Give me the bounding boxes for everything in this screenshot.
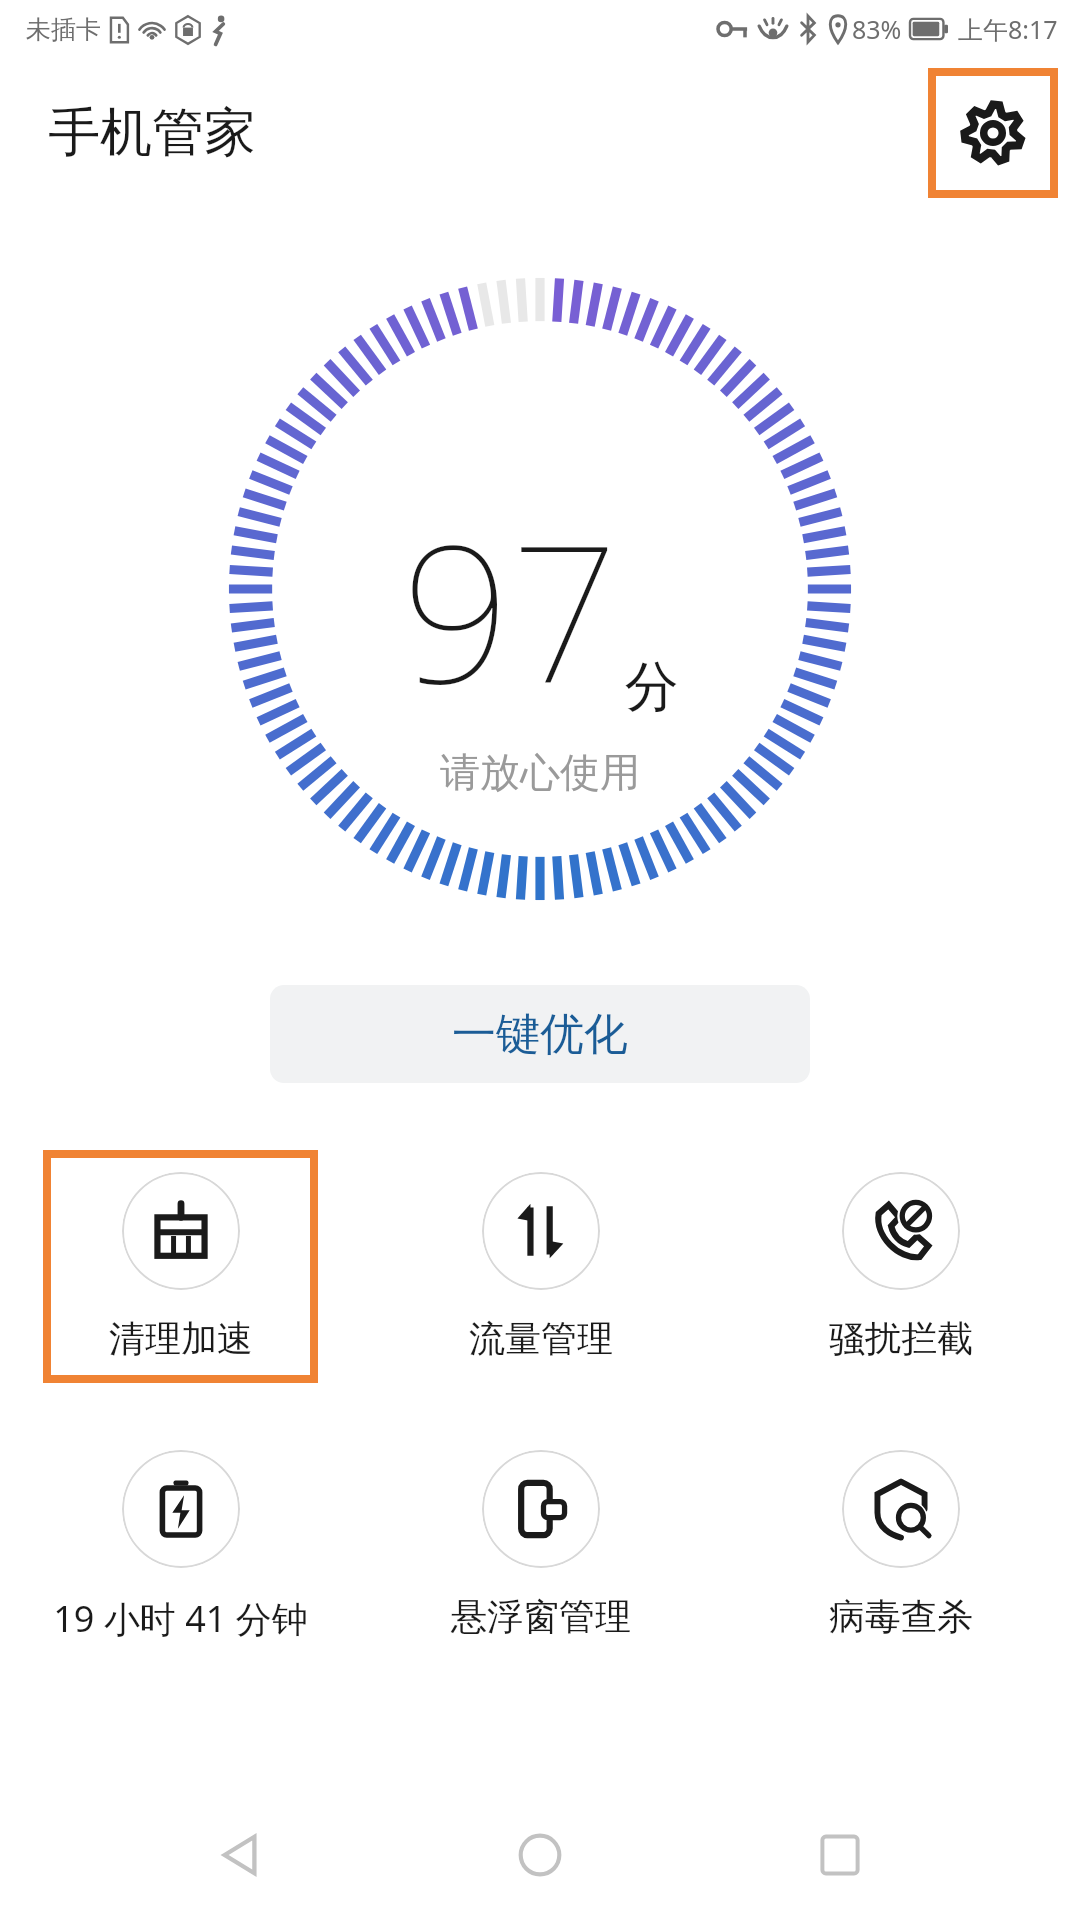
staticText: 流量管理: [469, 1316, 613, 1361]
staticText: 请放心使用: [440, 747, 640, 797]
staticText: 19 小时 41 分钟: [53, 1594, 308, 1643]
staticText: 悬浮窗管理: [451, 1594, 631, 1639]
button[interactable]: Home: [480, 1795, 600, 1915]
staticText: 97: [402, 480, 619, 739]
staticText: 病毒查杀: [829, 1594, 973, 1639]
button[interactable]: 19 小时 41 分钟: [43, 1428, 318, 1665]
staticText: 手机管家: [48, 100, 256, 166]
button[interactable]: 病毒查杀: [763, 1428, 1038, 1661]
button[interactable]: Recents: [780, 1795, 900, 1915]
staticText: 骚扰拦截: [829, 1316, 973, 1361]
button[interactable]: 流量管理: [403, 1150, 678, 1383]
button[interactable]: 骚扰拦截: [763, 1150, 1038, 1383]
staticText: 清理加速: [109, 1316, 253, 1361]
button[interactable]: Settings: [928, 68, 1058, 198]
button[interactable]: 悬浮窗管理: [403, 1428, 678, 1661]
button[interactable]: 清理加速: [43, 1150, 318, 1383]
button[interactable]: 一键优化: [270, 985, 810, 1083]
staticText: 分: [625, 653, 679, 721]
button[interactable]: Back: [180, 1795, 300, 1915]
staticText: 83%: [852, 12, 902, 46]
staticText: 一键优化: [452, 1007, 628, 1062]
staticText: 未插卡: [26, 14, 101, 45]
staticText: 上午8:17: [958, 12, 1058, 46]
